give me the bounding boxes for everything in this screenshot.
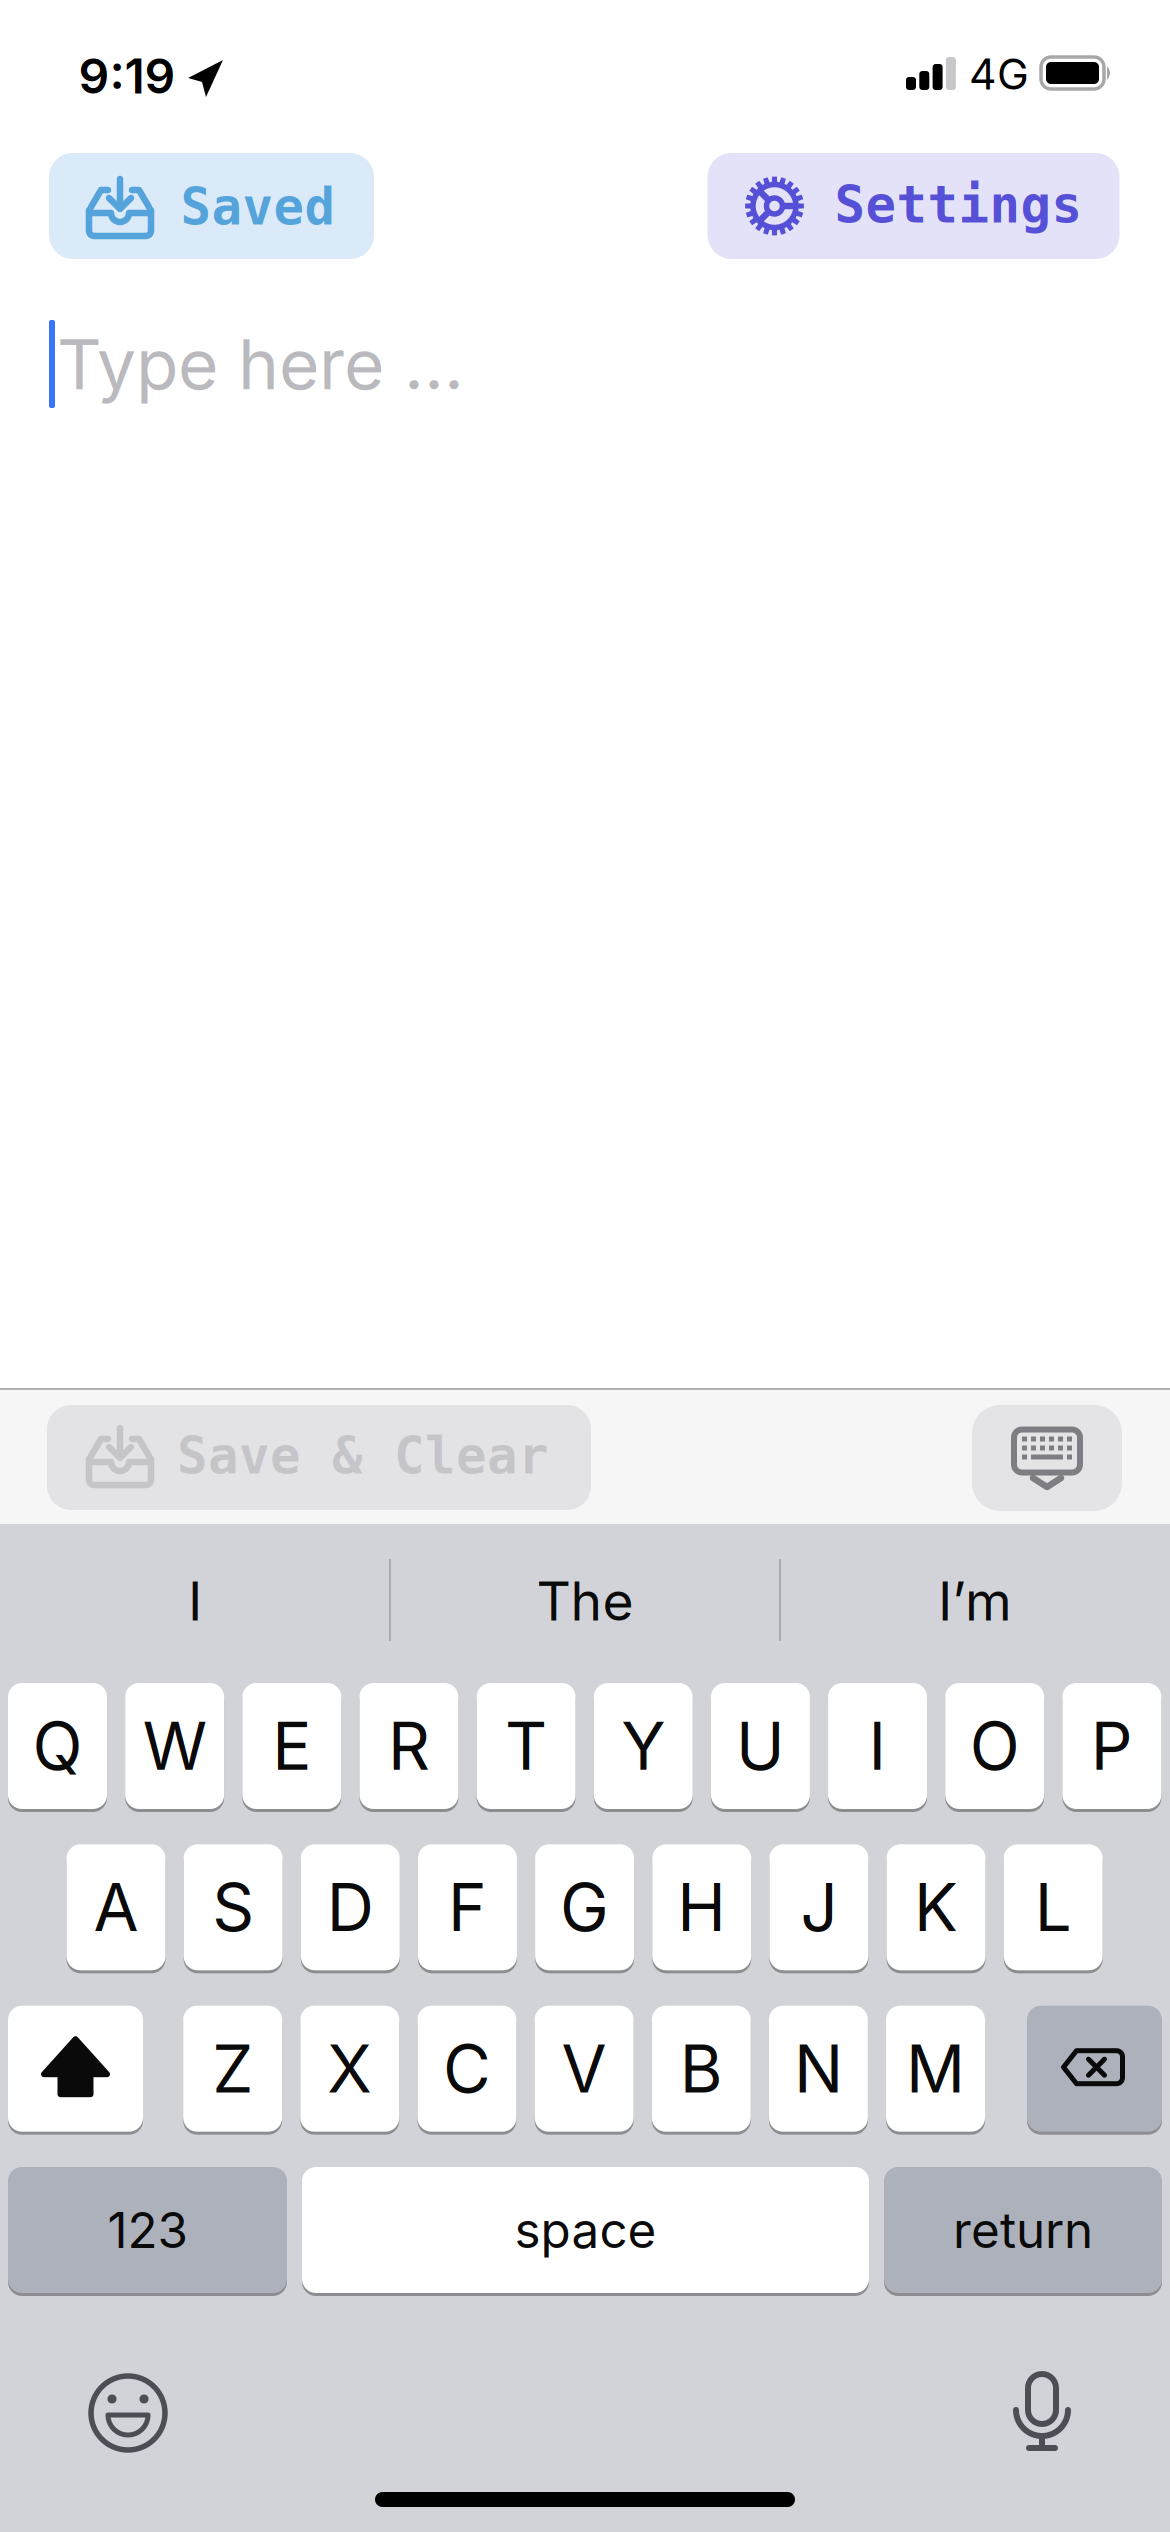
button[interactable]: [8, 2004, 143, 2133]
staticText: D: [327, 1869, 374, 1946]
button[interactable]: N: [769, 2004, 868, 2133]
staticText: W: [143, 1707, 207, 1785]
button[interactable]: H: [652, 1843, 751, 1972]
button[interactable]: K: [887, 1843, 986, 1972]
button[interactable]: I: [828, 1681, 927, 1810]
button[interactable]: The: [395, 1546, 775, 1656]
button[interactable]: P: [1062, 1681, 1161, 1810]
button[interactable]: J: [769, 1843, 868, 1972]
button[interactable]: F: [418, 1843, 517, 1972]
button[interactable]: G: [535, 1843, 634, 1972]
staticText: M: [906, 2030, 965, 2107]
button[interactable]: Save & Clear: [47, 1405, 591, 1510]
staticText: X: [327, 2030, 372, 2107]
staticText: Q: [32, 1707, 82, 1785]
staticText: I: [188, 1569, 202, 1632]
staticText: B: [680, 2030, 723, 2107]
button[interactable]: [1027, 2004, 1162, 2133]
staticText: R: [388, 1707, 430, 1785]
button[interactable]: I: [5, 1546, 385, 1656]
staticText: K: [914, 1869, 958, 1946]
staticText: T: [505, 1707, 547, 1785]
button[interactable]: return: [884, 2165, 1162, 2294]
staticText: E: [272, 1707, 311, 1785]
button[interactable]: [972, 1405, 1122, 1511]
staticText: 4G: [969, 49, 1029, 99]
staticText: 123: [107, 2201, 187, 2259]
button[interactable]: C: [417, 2004, 516, 2133]
button[interactable]: T: [477, 1681, 576, 1810]
button[interactable]: Z: [183, 2004, 282, 2133]
button[interactable]: M: [886, 2004, 985, 2133]
staticText: S: [212, 1869, 254, 1946]
staticText: Z: [212, 2030, 253, 2107]
staticText: G: [560, 1869, 609, 1946]
staticText: Settings: [834, 176, 1082, 234]
button[interactable]: I’m: [785, 1546, 1165, 1656]
staticText: I’m: [938, 1569, 1012, 1632]
button[interactable]: Y: [594, 1681, 693, 1810]
button[interactable]: [982, 2348, 1102, 2468]
staticText: H: [677, 1869, 726, 1946]
button[interactable]: V: [535, 2004, 634, 2133]
button[interactable]: R: [359, 1681, 458, 1810]
button[interactable]: W: [125, 1681, 224, 1810]
button[interactable]: L: [1004, 1843, 1103, 1972]
button[interactable]: Q: [8, 1681, 107, 1810]
staticText: L: [1035, 1869, 1072, 1946]
staticText: N: [794, 2030, 843, 2107]
staticText: V: [562, 2030, 607, 2107]
button[interactable]: Saved: [49, 153, 374, 259]
button[interactable]: space: [302, 2165, 869, 2294]
button[interactable]: Settings: [707, 153, 1119, 259]
staticText: A: [93, 1869, 138, 1946]
button[interactable]: E: [242, 1681, 341, 1810]
staticText: I: [869, 1707, 887, 1785]
button[interactable]: U: [711, 1681, 810, 1810]
staticText: space: [514, 2201, 656, 2259]
staticText: Type here ...: [57, 323, 464, 405]
staticText: P: [1091, 1707, 1133, 1785]
button[interactable]: X: [300, 2004, 399, 2133]
staticText: Y: [621, 1707, 665, 1785]
button[interactable]: S: [184, 1843, 283, 1972]
button[interactable]: B: [652, 2004, 751, 2133]
button[interactable]: [64, 2353, 192, 2473]
button[interactable]: D: [301, 1843, 400, 1972]
staticText: O: [970, 1707, 1020, 1785]
staticText: U: [736, 1707, 785, 1785]
staticText: F: [448, 1869, 487, 1946]
button[interactable]: O: [945, 1681, 1044, 1810]
staticText: The: [536, 1569, 633, 1632]
staticText: 9:19: [78, 48, 175, 104]
staticText: return: [953, 2201, 1093, 2259]
button[interactable]: A: [66, 1843, 165, 1972]
staticText: Save & Clear: [177, 1427, 549, 1485]
button[interactable]: 123: [8, 2165, 287, 2294]
staticText: C: [443, 2030, 491, 2107]
staticText: Saved: [180, 178, 335, 236]
staticText: J: [800, 1869, 837, 1946]
